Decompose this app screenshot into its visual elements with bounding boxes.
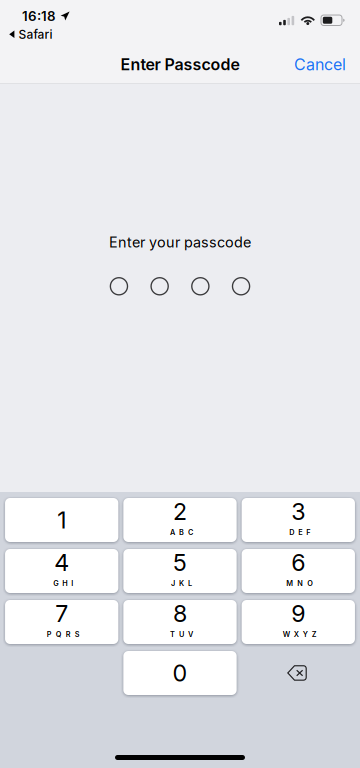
staticText: ABC — [170, 528, 193, 537]
staticText: 9 — [291, 599, 305, 628]
staticText: Safari — [19, 27, 53, 41]
button[interactable]: 8 — [123, 600, 237, 644]
button[interactable]: Delete — [242, 651, 355, 695]
staticText: 8 — [173, 599, 187, 628]
staticText: DEF — [289, 528, 310, 537]
staticText: 7 — [55, 599, 68, 628]
staticText: WXYZ — [283, 630, 317, 639]
button[interactable]: 1 — [5, 498, 118, 542]
staticText: Cancel — [294, 55, 346, 74]
staticText: 5 — [173, 548, 187, 577]
staticText: 16:18 — [22, 8, 56, 24]
staticText: GHI — [53, 579, 73, 588]
button[interactable]: 5 — [123, 549, 237, 593]
button[interactable]: 9 — [242, 600, 355, 644]
button[interactable]: 4 — [5, 549, 118, 593]
staticText: 6 — [291, 548, 305, 577]
staticText: 3 — [291, 497, 305, 526]
staticText: TUV — [170, 630, 193, 639]
staticText: 0 — [172, 659, 187, 687]
staticText: 1 — [57, 506, 66, 534]
staticText: JKL — [171, 579, 192, 588]
staticText: PQRS — [47, 630, 80, 639]
button[interactable]: 0 — [123, 651, 237, 695]
button[interactable]: Cancel — [280, 46, 360, 83]
button[interactable]: 6 — [242, 549, 355, 593]
button[interactable]: Safari — [0, 0, 53, 41]
staticText: Enter Passcode — [120, 55, 239, 74]
button[interactable]: 2 — [123, 498, 237, 542]
staticText: 2 — [173, 497, 187, 526]
button[interactable]: 7 — [5, 600, 118, 644]
staticText: 4 — [54, 548, 69, 577]
staticText: Enter your passcode — [109, 234, 251, 251]
button[interactable]: 3 — [242, 498, 355, 542]
staticText: MNO — [286, 579, 313, 588]
